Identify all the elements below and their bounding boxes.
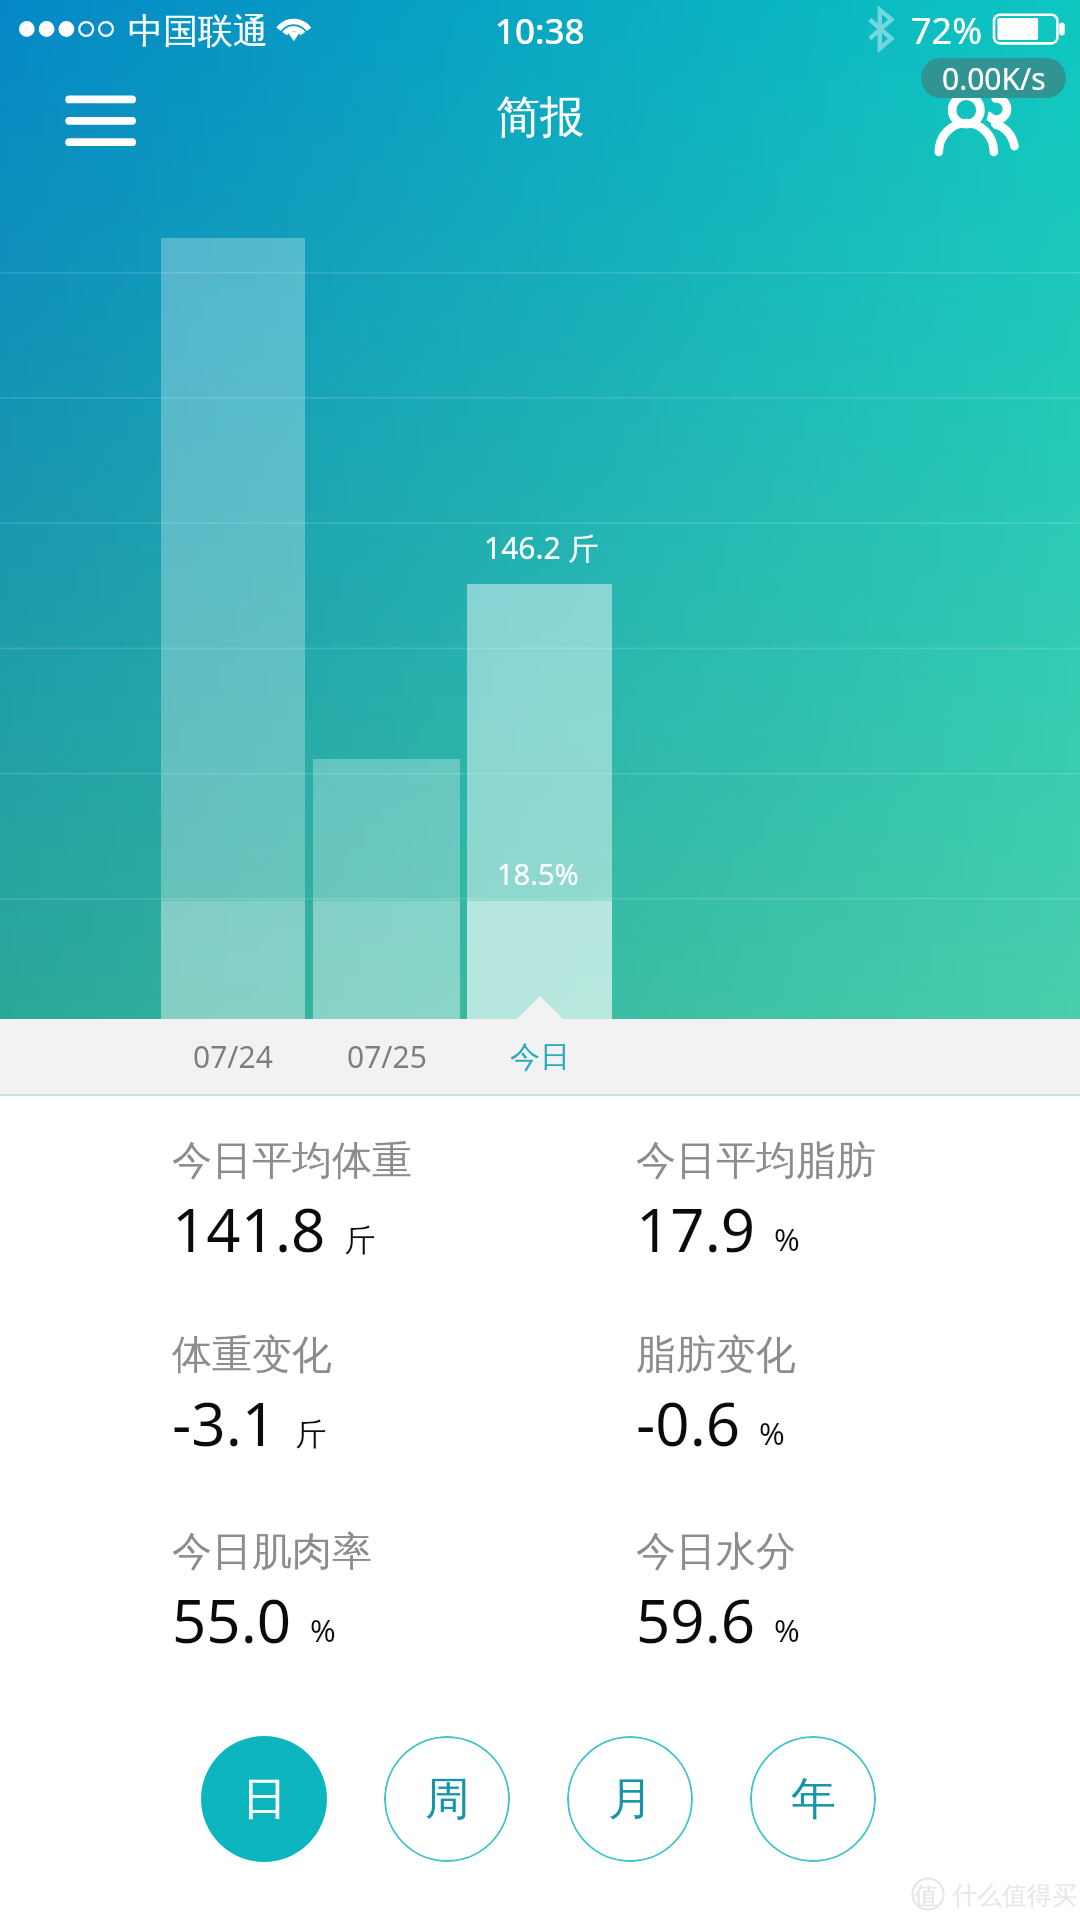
button[interactable]: 07/25 <box>313 1019 460 1094</box>
staticText: % <box>310 1609 336 1651</box>
staticText: 简报 <box>0 90 1080 145</box>
staticText: % <box>774 1609 800 1651</box>
button[interactable]: 今日 <box>467 1019 612 1094</box>
button[interactable]: 今日水分 <box>636 1526 800 1608</box>
staticText: 0.00K/s <box>942 58 1046 98</box>
staticText: 体重变化 <box>172 1329 332 1379</box>
staticText: 值 <box>914 1881 938 1911</box>
staticText: 17.9 <box>636 1188 756 1270</box>
button[interactable]: 周 <box>384 1736 510 1862</box>
button[interactable]: Menu <box>45 75 155 165</box>
button[interactable]: 今日平均体重 <box>172 1135 412 1217</box>
button[interactable]: 今日平均脂肪 <box>636 1135 876 1217</box>
staticText: 斤 <box>344 1221 375 1260</box>
staticText: 中国联通 <box>128 9 268 53</box>
button[interactable]: 脂肪变化 <box>636 1329 796 1411</box>
staticText: 今日 <box>510 1038 570 1076</box>
staticText: 18.5% <box>497 854 579 893</box>
button[interactable]: 月 <box>567 1736 693 1862</box>
staticText: 脂肪变化 <box>636 1329 796 1379</box>
staticText: % <box>759 1412 785 1454</box>
staticText: 59.6 <box>636 1579 756 1661</box>
staticText: % <box>774 1218 800 1260</box>
button[interactable]: Friends <box>924 88 1034 173</box>
button[interactable]: 07/24 <box>161 1019 305 1094</box>
staticText: -3.1 <box>172 1382 277 1464</box>
button[interactable]: 日 <box>201 1736 327 1862</box>
button[interactable]: 体重变化 <box>172 1329 332 1411</box>
staticText: 141.8 <box>172 1188 326 1270</box>
staticText: 今日平均体重 <box>172 1135 412 1185</box>
staticText: 72% <box>911 6 983 55</box>
staticText: 07/24 <box>193 1036 273 1077</box>
staticText: -0.6 <box>636 1382 741 1464</box>
staticText: 今日平均脂肪 <box>636 1135 876 1185</box>
button[interactable]: 今日肌肉率 <box>172 1526 372 1608</box>
staticText: 什么值得买 <box>952 1880 1077 1911</box>
staticText: 斤 <box>295 1415 326 1454</box>
staticText: 年 <box>791 1771 836 1828</box>
staticText: 10:38 <box>495 7 585 55</box>
staticText: 07/25 <box>347 1036 427 1077</box>
staticText: 55.0 <box>172 1579 292 1661</box>
staticText: 今日水分 <box>636 1526 796 1576</box>
staticText: 146.2 斤 <box>484 527 599 568</box>
staticText: 今日肌肉率 <box>172 1526 372 1576</box>
staticText: 月 <box>608 1771 653 1828</box>
staticText: 日 <box>242 1771 287 1828</box>
button[interactable]: 年 <box>750 1736 876 1862</box>
staticText: 周 <box>425 1771 470 1828</box>
